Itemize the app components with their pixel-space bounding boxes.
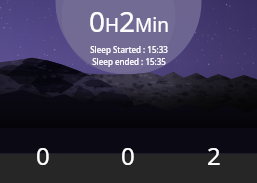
staticText: 0	[121, 139, 135, 172]
button[interactable]: 2	[171, 128, 257, 183]
staticText: Sleep ended : 15:35	[92, 56, 166, 67]
staticText: 2	[207, 139, 221, 172]
staticText: 0	[36, 139, 50, 172]
button[interactable]: 0	[85, 128, 171, 183]
staticText: Sleep Started : 15:33	[90, 44, 168, 55]
button[interactable]: 0	[0, 128, 85, 183]
staticText: 0H2Min	[89, 2, 169, 40]
